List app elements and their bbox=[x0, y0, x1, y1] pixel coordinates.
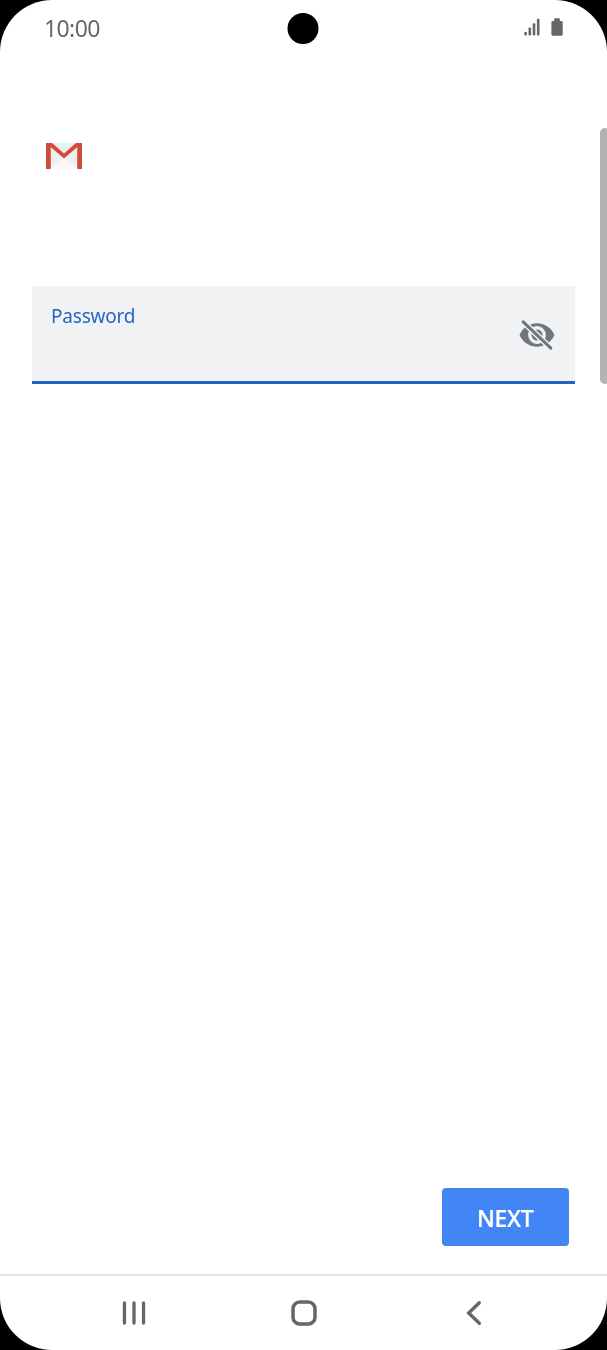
button[interactable]: Recent apps bbox=[109, 1288, 159, 1338]
button[interactable]: Show password bbox=[509, 307, 565, 363]
button[interactable]: Back bbox=[449, 1288, 499, 1338]
staticText: 10:00 bbox=[44, 12, 100, 43]
button[interactable]: Password bbox=[32, 286, 575, 381]
button[interactable]: Home bbox=[279, 1288, 329, 1338]
button[interactable]: NEXT bbox=[442, 1188, 569, 1246]
staticText: NEXT bbox=[477, 1202, 534, 1233]
staticText: Password bbox=[51, 303, 136, 329]
